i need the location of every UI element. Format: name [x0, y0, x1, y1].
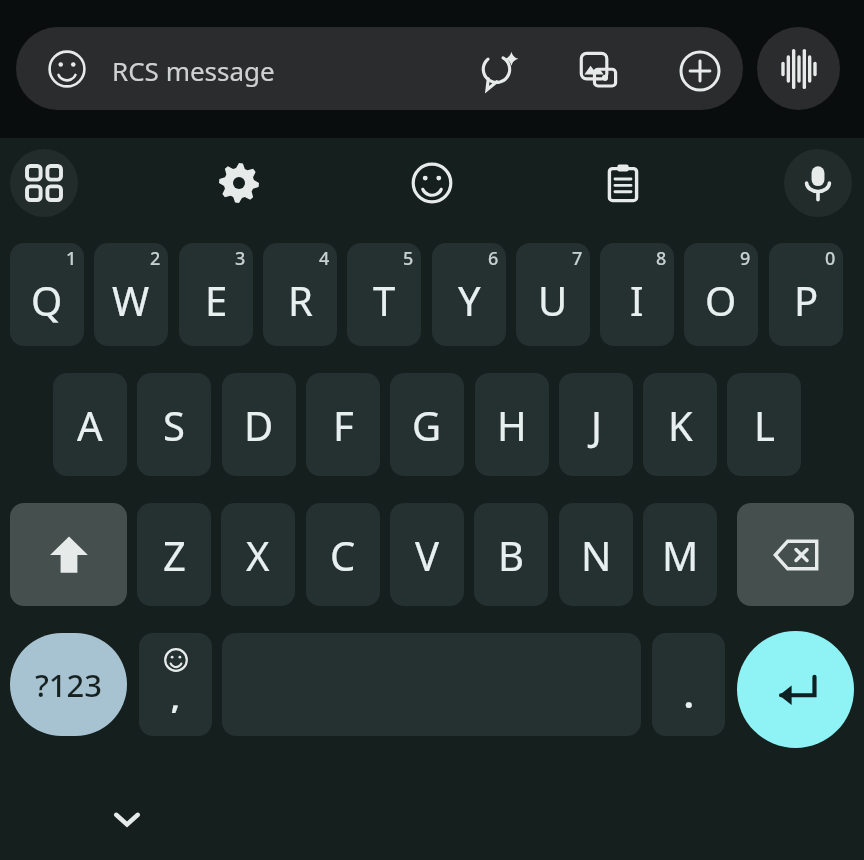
button[interactable]: J [559, 373, 633, 476]
button[interactable]: Hide keyboard [96, 788, 158, 850]
staticText: E [205, 273, 228, 327]
staticText: W [112, 273, 150, 327]
staticText: M [662, 528, 699, 582]
button[interactable]: M [643, 503, 717, 606]
staticText: 9 [740, 246, 751, 271]
staticText: 5 [403, 246, 414, 271]
button[interactable]: S [137, 373, 211, 476]
button[interactable]: Clipboard [589, 149, 657, 217]
button[interactable]: . [652, 633, 725, 736]
button[interactable]: Emoji and comma [139, 633, 212, 736]
staticText: O [705, 273, 737, 327]
button[interactable]: Gallery [576, 49, 620, 93]
button[interactable]: Voice message [757, 27, 840, 110]
staticText: G [412, 398, 442, 452]
button[interactable]: 8 [600, 243, 674, 346]
button[interactable]: B [474, 503, 548, 606]
button[interactable]: Emoji [16, 27, 743, 110]
staticText: 4 [319, 246, 330, 271]
staticText: A [77, 398, 103, 452]
button[interactable]: Add [678, 49, 722, 93]
staticText: U [538, 273, 568, 327]
button[interactable]: Smart reply [478, 49, 522, 93]
button[interactable]: A [53, 373, 127, 476]
button[interactable]: Toolbox [10, 149, 78, 217]
staticText: C [330, 528, 356, 582]
button[interactable]: 1 [10, 243, 84, 346]
staticText: V [415, 528, 439, 582]
staticText: 2 [150, 246, 161, 271]
button[interactable]: ?123 [10, 633, 127, 736]
staticText: 8 [656, 246, 667, 271]
staticText: X [246, 528, 270, 582]
button[interactable]: L [727, 373, 801, 476]
staticText: RCS message [112, 53, 275, 88]
button[interactable]: N [559, 503, 633, 606]
button[interactable]: Z [137, 503, 211, 606]
button[interactable]: G [390, 373, 464, 476]
staticText: H [497, 398, 527, 452]
staticText: Y [458, 273, 481, 327]
staticText: D [244, 398, 274, 452]
button[interactable]: 7 [516, 243, 590, 346]
button[interactable]: 6 [432, 243, 506, 346]
button[interactable]: H [475, 373, 549, 476]
button[interactable]: 2 [94, 243, 168, 346]
button[interactable]: Voice input [784, 149, 852, 217]
button[interactable]: 0 [769, 243, 843, 346]
staticText: F [333, 398, 354, 452]
staticText: B [498, 528, 524, 582]
button[interactable]: Emoji [47, 49, 87, 89]
staticText: ?123 [35, 664, 103, 706]
button[interactable]: X [221, 503, 295, 606]
button[interactable]: 5 [347, 243, 421, 346]
button[interactable]: Backspace [737, 503, 854, 606]
staticText: R [288, 273, 313, 327]
staticText: P [794, 273, 819, 327]
button[interactable]: K [643, 373, 717, 476]
button[interactable]: Settings [205, 149, 273, 217]
button[interactable]: Shift [10, 503, 127, 606]
button[interactable]: 3 [179, 243, 253, 346]
staticText: Q [31, 273, 63, 327]
button[interactable]: F [306, 373, 380, 476]
staticText: 1 [66, 246, 77, 271]
button[interactable]: 4 [263, 243, 337, 346]
button[interactable]: V [390, 503, 464, 606]
button[interactable]: C [306, 503, 380, 606]
staticText: I [630, 273, 644, 327]
staticText: T [373, 273, 396, 327]
button[interactable]: Emoji [398, 149, 466, 217]
staticText: S [163, 398, 185, 452]
staticText: K [668, 398, 693, 452]
staticText: N [581, 528, 612, 582]
staticText: . [684, 672, 694, 718]
staticText: 3 [235, 246, 246, 271]
button[interactable]: 9 [684, 243, 758, 346]
button[interactable]: D [222, 373, 296, 476]
button[interactable]: Enter [737, 631, 854, 748]
staticText: 6 [488, 246, 499, 271]
staticText: 7 [572, 246, 583, 271]
staticText: J [591, 398, 602, 452]
staticText: , [171, 677, 180, 718]
staticText: L [754, 398, 775, 452]
staticText: 0 [825, 246, 836, 271]
staticText: Z [163, 528, 186, 582]
